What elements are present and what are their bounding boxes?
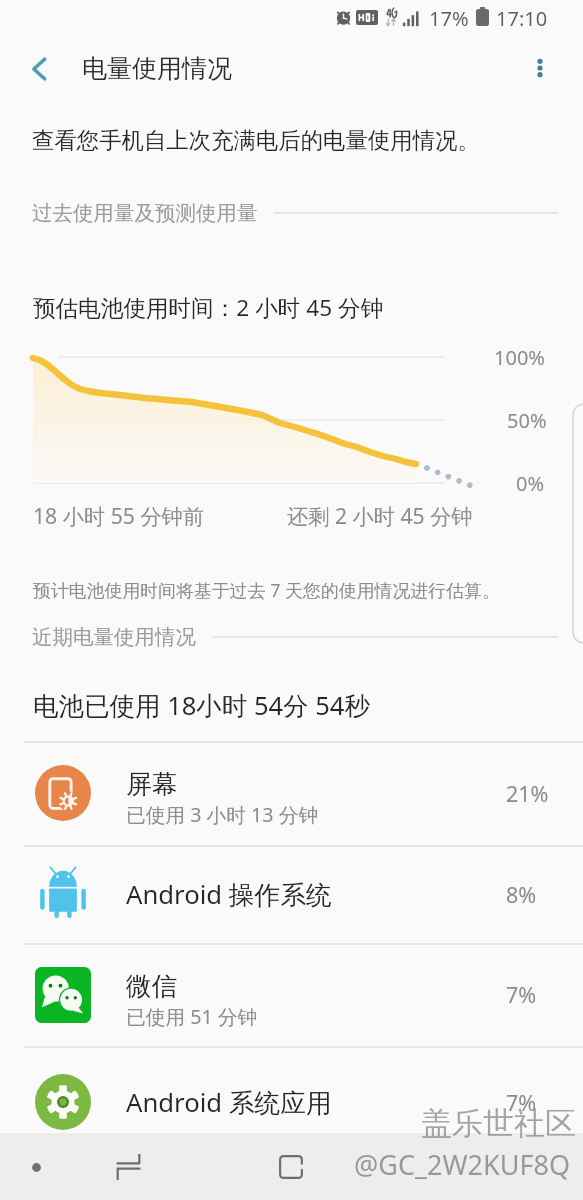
button[interactable]: Android 操作系统 [0,845,583,943]
staticText: 微信 [126,970,178,1002]
button[interactable]: Android 系统应用 [0,1046,583,1158]
button[interactable]: 屏幕 [0,741,583,845]
staticText: 21% [506,779,549,808]
staticText: 18 小时 55 分钟前 [33,501,204,530]
button[interactable]: Hide navigation bar [6,1137,66,1197]
staticText: 过去使用量及预测使用量 [32,200,258,226]
staticText: 17:10 [496,5,548,32]
staticText: 已使用 51 分钟 [126,1003,258,1030]
staticText: 7% [506,980,537,1009]
button[interactable]: More options [516,44,564,92]
staticText: 50% [507,407,547,434]
staticText: 预计电池使用时间将基于过去 7 天您的使用情况进行估算。 [33,578,500,602]
button[interactable]: Recent apps [98,1137,158,1197]
staticText: 0% [516,470,545,497]
staticText: @GC_2W2KUF8Q [354,1146,570,1183]
staticText: 近期电量使用情况 [32,624,196,650]
staticText: 查看您手机自上次充满电后的电量使用情况。 [32,126,480,154]
staticText: 已使用 3 小时 13 分钟 [126,801,319,828]
staticText: Android 操作系统 [126,877,332,912]
staticText: 电量使用情况 [82,53,232,84]
staticText: 盖乐世社区 [421,1104,576,1143]
button[interactable]: Back [14,44,64,94]
staticText: Android 系统应用 [126,1085,332,1120]
staticText: 100% [494,344,545,371]
button[interactable]: Home [261,1137,321,1197]
staticText: 屏幕 [126,768,178,800]
staticText: 电池已使用 18小时 54分 54秒 [33,688,370,723]
staticText: 预估电池使用时间：2 小时 45 分钟 [33,292,384,323]
staticText: 8% [506,880,537,909]
button[interactable]: 微信 [0,943,583,1046]
staticText: 还剩 2 小时 45 分钟 [287,501,473,530]
staticText: 17% [429,5,469,32]
staticText: 7% [506,1088,537,1117]
